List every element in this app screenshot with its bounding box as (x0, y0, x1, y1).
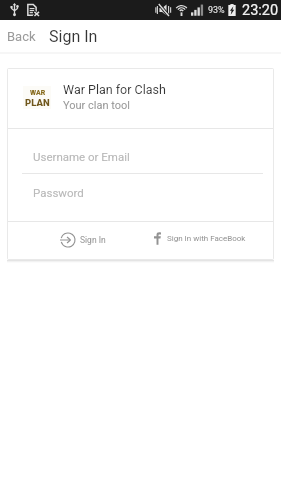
staticText: 93% (208, 5, 225, 16)
button[interactable]: Password (8, 174, 273, 221)
staticText: Sign In (49, 27, 98, 46)
button[interactable]: Back (1, 23, 42, 50)
button[interactable]: Sign In with FaceBook (148, 224, 252, 253)
staticText: Password (33, 186, 84, 199)
button[interactable]: Sign In (52, 224, 114, 256)
button[interactable]: WAR (8, 69, 273, 128)
staticText: Sign In (80, 235, 106, 245)
staticText: WAR (30, 89, 46, 97)
staticText: Sign In with FaceBook (167, 234, 246, 243)
button[interactable]: Username or Email (8, 129, 273, 173)
staticText: Back (7, 29, 36, 44)
staticText: War Plan for Clash (63, 82, 166, 97)
staticText: Your clan tool (63, 99, 130, 112)
staticText: PLAN (25, 97, 50, 108)
staticText: Username or Email (33, 150, 130, 163)
staticText: 23:20 (242, 2, 279, 19)
